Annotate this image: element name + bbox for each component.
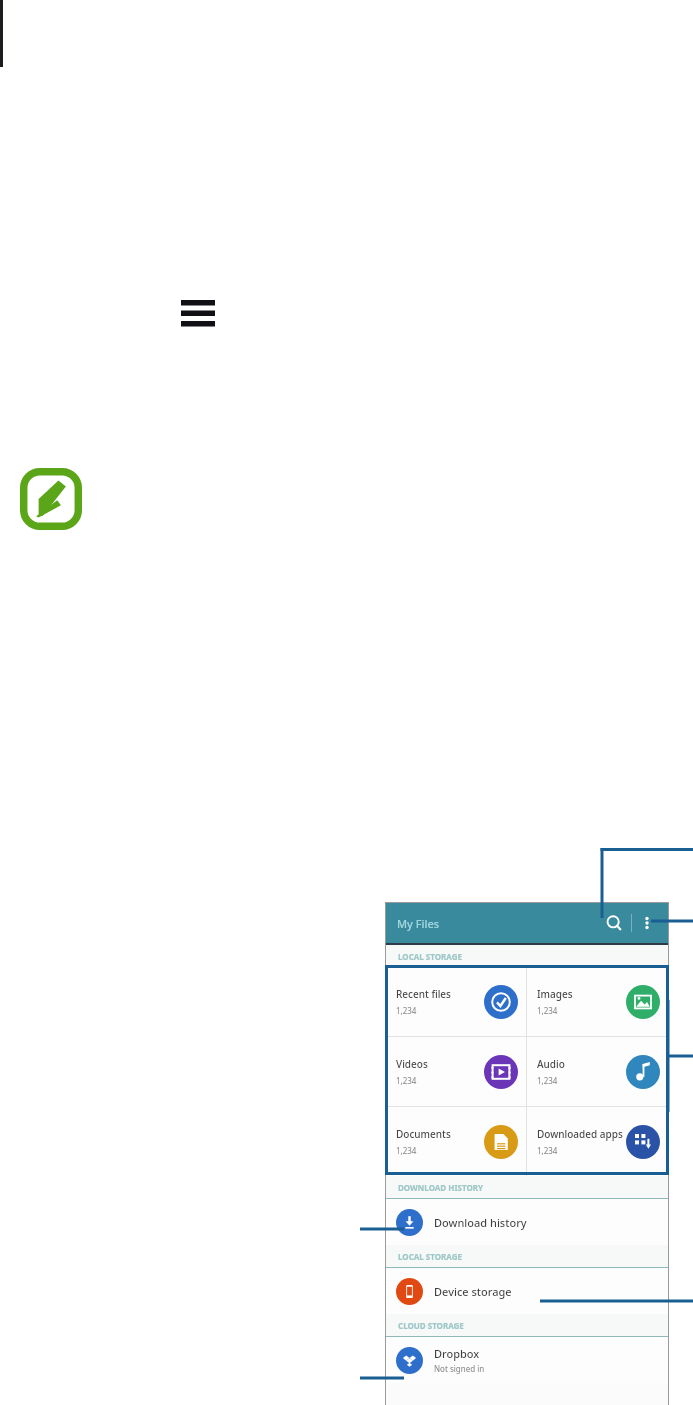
staticText: Dropbox (434, 1346, 480, 1361)
staticText: LOCAL STORAGE (398, 1251, 462, 1262)
staticText: Downloaded apps (537, 1127, 623, 1141)
staticText: Documents (396, 1127, 451, 1141)
staticText: CLOUD STORAGE (398, 1320, 464, 1331)
staticText: 1,234 (537, 1075, 558, 1086)
button[interactable]: Device storage (386, 1268, 668, 1314)
button[interactable]: Dropbox (386, 1337, 668, 1383)
staticText: 1,234 (537, 1005, 558, 1016)
button[interactable]: Menu (181, 300, 215, 328)
button[interactable]: Recent files (386, 967, 526, 1036)
staticText: 1,234 (537, 1145, 558, 1156)
staticText: 1,234 (396, 1005, 417, 1016)
button[interactable]: Images (527, 967, 668, 1036)
staticText: 1,234 (396, 1145, 417, 1156)
button[interactable]: Download history (386, 1199, 668, 1245)
staticText: Download history (434, 1215, 527, 1230)
button[interactable]: More options (632, 908, 662, 938)
staticText: Recent files (396, 987, 451, 1001)
button[interactable]: Documents (386, 1107, 526, 1176)
staticText: Device storage (434, 1284, 512, 1299)
staticText: Audio (537, 1057, 565, 1071)
staticText: Videos (396, 1057, 428, 1071)
staticText: LOCAL STORAGE (398, 951, 462, 962)
staticText: 1,234 (396, 1075, 417, 1086)
button[interactable]: Search (597, 906, 631, 940)
staticText: DOWNLOAD HISTORY (398, 1182, 483, 1193)
staticText: Not signed in (434, 1363, 485, 1374)
button[interactable]: Downloaded apps (527, 1107, 668, 1176)
staticText: Images (537, 987, 573, 1001)
staticText: My Files (397, 916, 440, 931)
button[interactable]: Audio (527, 1037, 668, 1106)
button[interactable]: Videos (386, 1037, 526, 1106)
